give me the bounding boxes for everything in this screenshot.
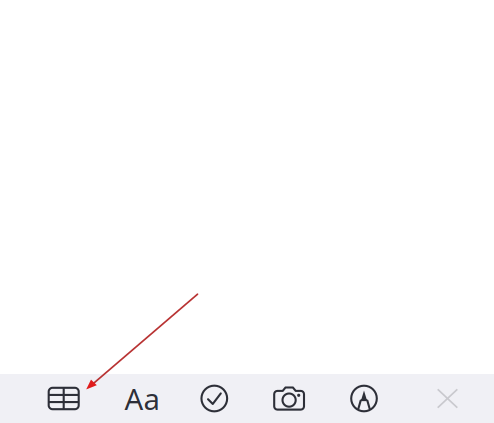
button[interactable]: Checklist: [192, 376, 236, 420]
button[interactable]: Markup: [342, 376, 386, 420]
staticText: Aa: [124, 379, 159, 418]
button[interactable]: Close: [425, 376, 469, 420]
button[interactable]: Camera: [267, 376, 311, 420]
button[interactable]: Aa: [114, 376, 170, 420]
button[interactable]: Table: [42, 376, 86, 420]
